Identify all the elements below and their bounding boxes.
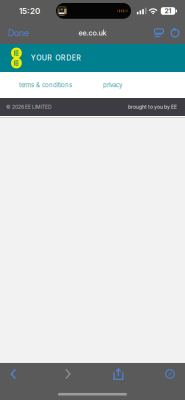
button[interactable]: Open in Safari [153,363,185,385]
staticText: privacy [103,81,122,89]
button[interactable]: Reload [167,24,183,42]
button[interactable]: Back [0,363,30,385]
button[interactable]: terms & conditions [13,75,78,95]
staticText: 21 [164,7,171,15]
staticText: © 2026 EE LIMITED [6,104,52,110]
button[interactable]: Forward [51,363,85,385]
staticText: brought to you by EE [128,104,177,110]
staticText: ee.co.uk [78,29,106,37]
staticText: terms & conditions [19,81,72,89]
button[interactable]: Share [101,363,135,385]
button[interactable]: Done [3,23,34,43]
staticText: Done [8,28,29,38]
button[interactable]: Page Settings [151,24,167,42]
button[interactable]: privacy [97,75,128,95]
staticText: YOUR ORDER [31,54,81,62]
staticText: 15:20 [19,6,40,16]
